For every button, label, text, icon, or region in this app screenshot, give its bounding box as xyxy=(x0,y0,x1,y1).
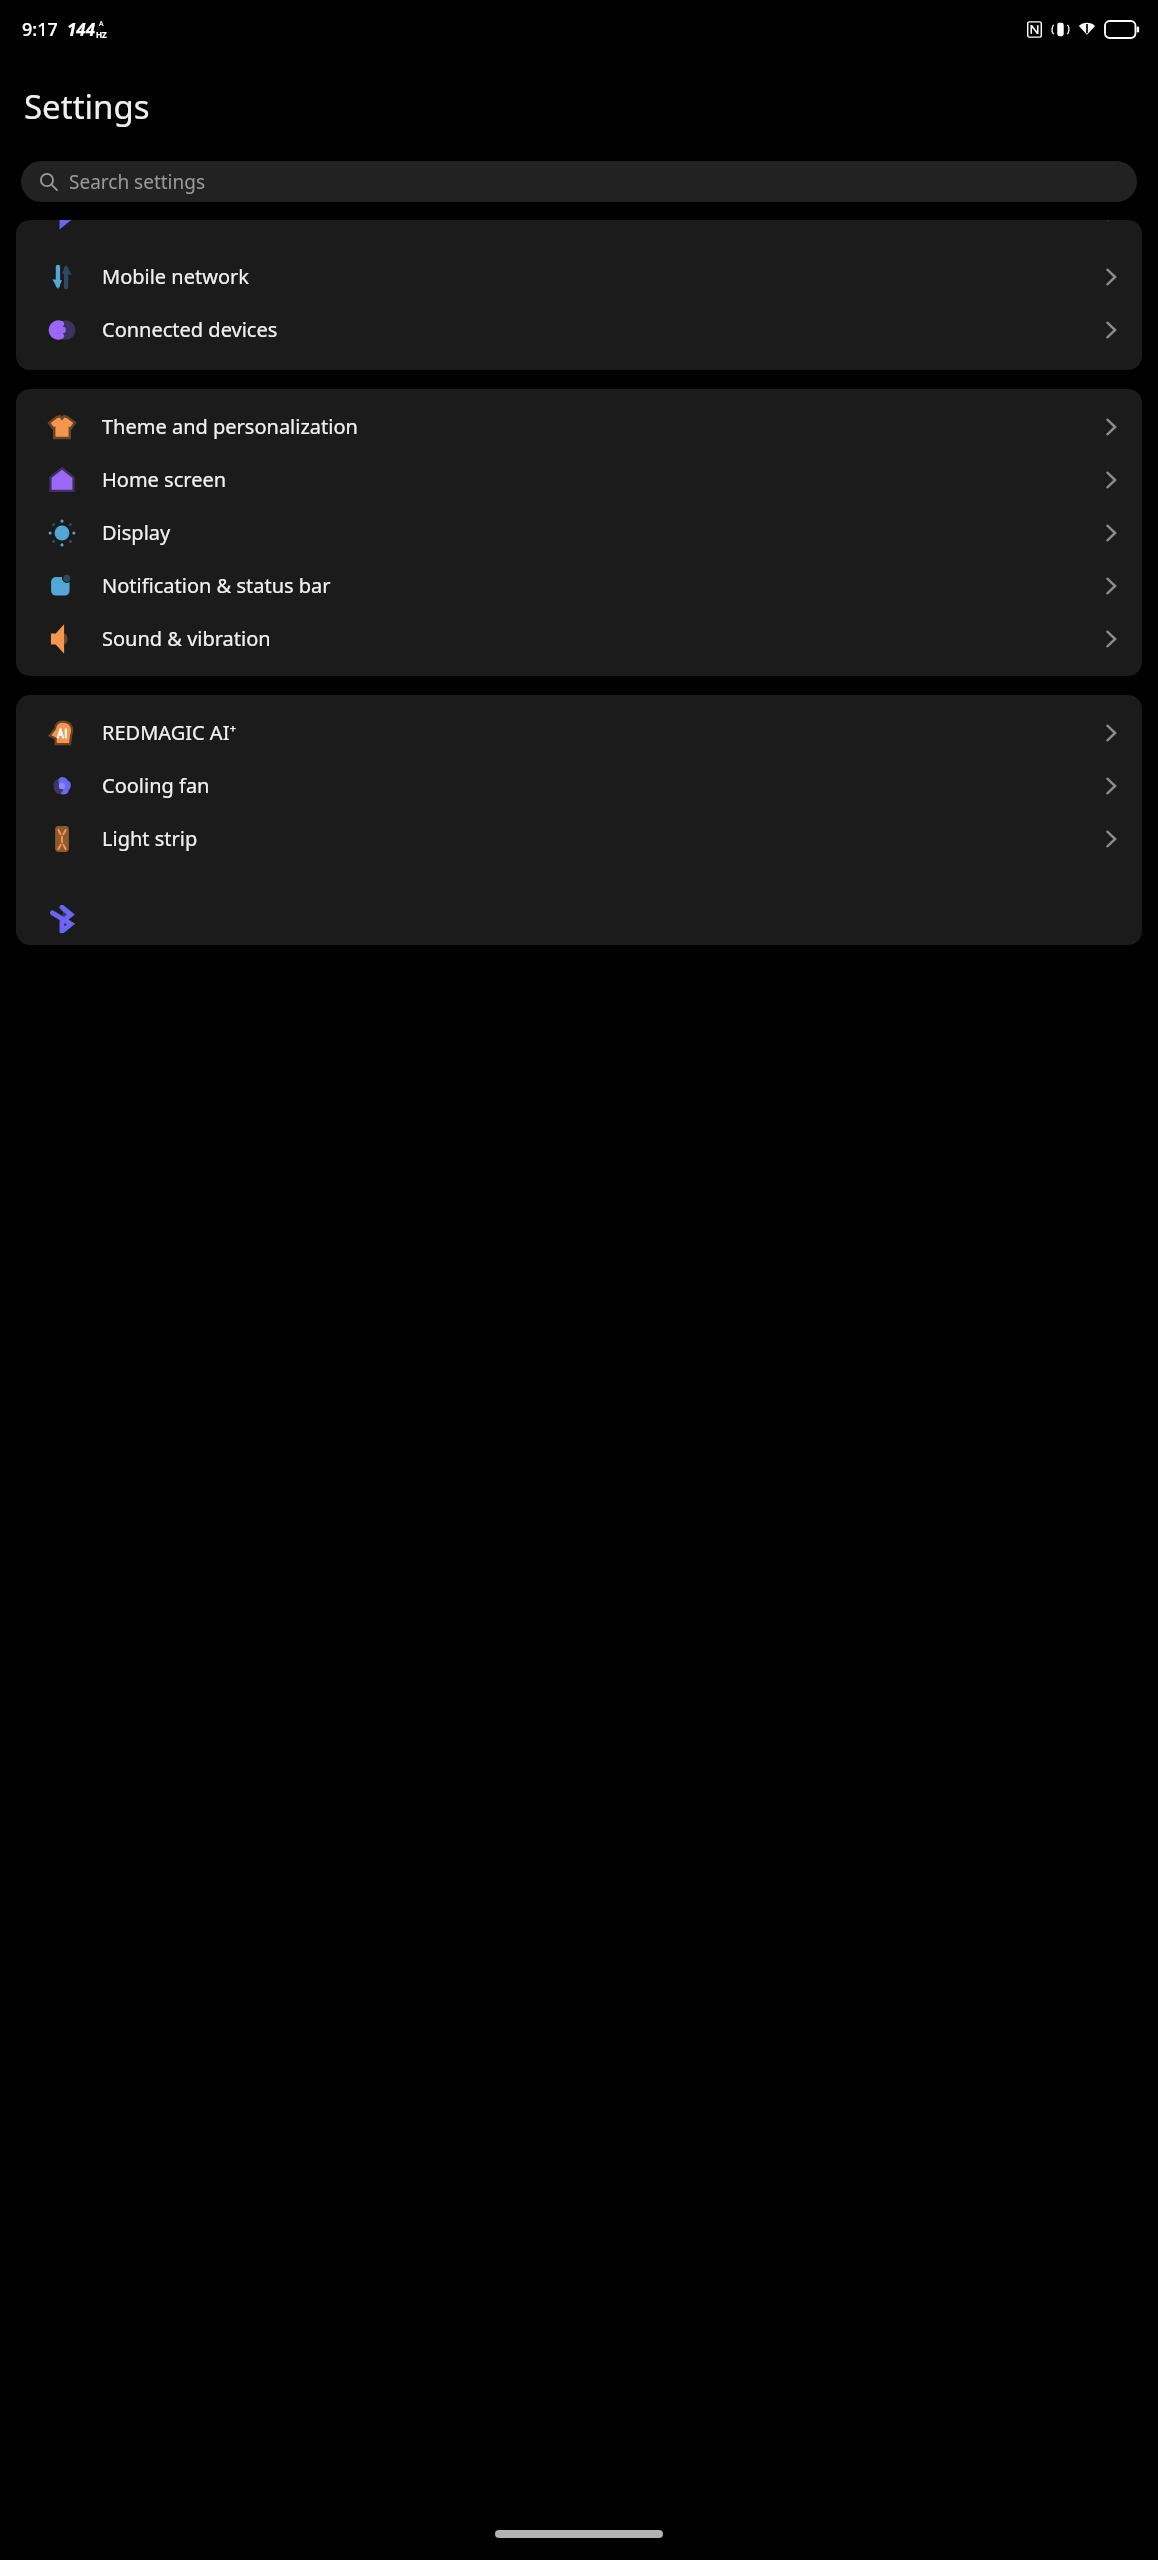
staticText: HZ xyxy=(96,29,107,40)
button[interactable]: Theme and personalization xyxy=(16,400,1142,453)
staticText: Cooling fan xyxy=(102,772,210,799)
other: Battery 100% xyxy=(1105,21,1140,38)
button[interactable]: Notification & status bar xyxy=(16,559,1142,612)
staticText: A xyxy=(99,19,104,29)
staticText: Notification & status bar xyxy=(102,572,331,599)
button[interactable]: Connected devices xyxy=(16,303,1142,356)
staticText: Sound & vibration xyxy=(102,625,271,652)
button[interactable]: Light strip xyxy=(16,812,1142,865)
other: Wi-Fi xyxy=(1078,20,1096,38)
button[interactable] xyxy=(16,905,1142,945)
staticText: Light strip xyxy=(102,825,198,852)
staticText: REDMAGIC AI⁺ xyxy=(102,719,237,746)
button[interactable]: REDMAGIC AI⁺ xyxy=(16,706,1142,759)
staticText: Theme and personalization xyxy=(102,413,358,440)
staticText: Settings xyxy=(24,84,150,129)
staticText: Search settings xyxy=(69,169,206,195)
button[interactable]: Search settings xyxy=(21,161,1137,202)
button[interactable]: Cooling fan xyxy=(16,759,1142,812)
staticText: Display xyxy=(102,519,171,546)
button[interactable]: Sound & vibration xyxy=(16,612,1142,665)
staticText: Mobile network xyxy=(102,263,249,290)
other: Vibrate xyxy=(1052,21,1069,38)
button[interactable]: Home screen xyxy=(16,453,1142,506)
staticText: Home screen xyxy=(102,466,227,493)
button[interactable]: Mobile network xyxy=(16,250,1142,303)
button[interactable]: Display xyxy=(16,506,1142,559)
staticText: 144 xyxy=(67,18,96,41)
staticText: 9:17 xyxy=(22,17,58,42)
button[interactable]: Bluetooth xyxy=(16,220,1142,227)
staticText: Connected devices xyxy=(102,316,278,343)
other: NFC xyxy=(1026,21,1043,38)
